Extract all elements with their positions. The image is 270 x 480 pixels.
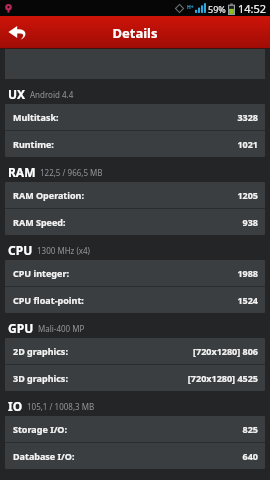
staticText: [720x1280] 806 <box>193 345 258 357</box>
staticText: [720x1280] 4525 <box>187 372 258 384</box>
staticText: 825 <box>242 423 258 435</box>
staticText: H+ <box>187 4 194 11</box>
staticText: RAM Operation: <box>13 189 84 201</box>
staticText: 3D graphics: <box>13 372 68 384</box>
button[interactable]: CPU integer: <box>5 260 265 286</box>
staticText: Details <box>0 24 270 42</box>
staticText: GPU <box>8 320 34 336</box>
button[interactable]: RAM Speed: <box>5 209 265 235</box>
staticText: 1988 <box>237 267 258 279</box>
staticText: Runtime: <box>13 138 54 150</box>
staticText: 122,5 / 966,5 MB <box>40 167 103 178</box>
staticText: CPU float-point: <box>13 294 84 306</box>
button[interactable]: Database I/O: <box>5 443 265 469</box>
button[interactable]: Back <box>0 16 36 49</box>
staticText: RAM Speed: <box>13 216 66 228</box>
staticText: 938 <box>242 216 258 228</box>
button[interactable]: 3D graphics: <box>5 365 265 391</box>
button[interactable]: Multitask: <box>5 104 265 130</box>
staticText: 59% <box>208 3 226 15</box>
staticText: 1300 MHz (x4) <box>37 245 91 256</box>
staticText: Android 4.4 <box>30 89 74 100</box>
staticText: UX <box>8 86 26 102</box>
staticText: Database I/O: <box>13 450 75 462</box>
button[interactable]: CPU float-point: <box>5 287 265 313</box>
staticText: RAM <box>8 164 36 180</box>
button[interactable]: Runtime: <box>5 131 265 157</box>
staticText: 105,1 / 1008,3 MB <box>27 401 95 412</box>
staticText: 1021 <box>237 138 258 150</box>
staticText: 2D graphics: <box>13 345 68 357</box>
staticText: CPU integer: <box>13 267 69 279</box>
staticText: Storage I/O: <box>13 423 68 435</box>
button[interactable]: 2D graphics: <box>5 338 265 364</box>
staticText: 640 <box>242 450 258 462</box>
staticText: Multitask: <box>13 111 59 123</box>
staticText: Mali-400 MP <box>38 323 85 334</box>
staticText: CPU <box>8 242 33 258</box>
staticText: 1205 <box>237 189 258 201</box>
staticText: 14:52 <box>238 1 267 16</box>
staticText: 1524 <box>237 294 258 306</box>
staticText: IO <box>8 398 23 414</box>
staticText: 3328 <box>237 111 258 123</box>
button[interactable]: Storage I/O: <box>5 416 265 442</box>
button[interactable]: RAM Operation: <box>5 182 265 208</box>
